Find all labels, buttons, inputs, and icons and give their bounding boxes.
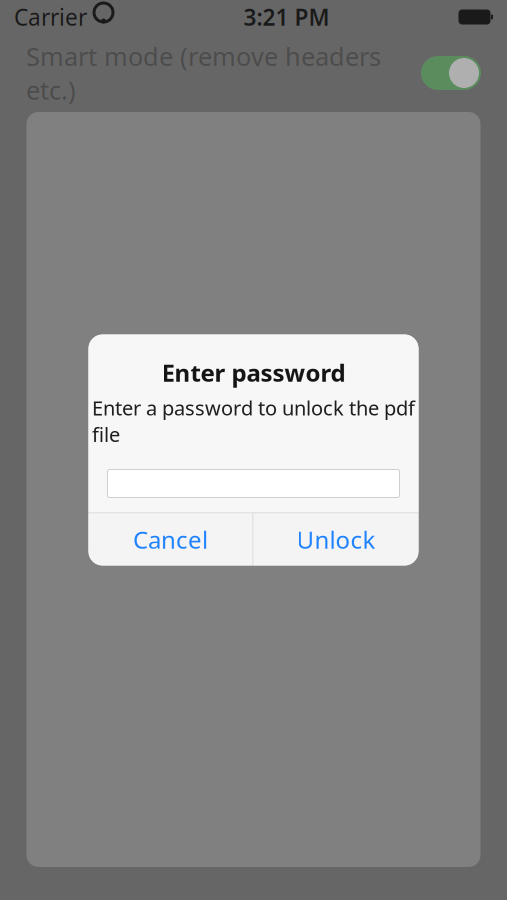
button[interactable]: Cancel: [88, 513, 252, 565]
staticText: Unlock: [296, 524, 375, 555]
staticText: Enter a password to unlock the pdf file: [92, 394, 415, 447]
staticText: Carrier: [14, 2, 87, 32]
staticText: 3:21 PM: [243, 2, 329, 32]
button[interactable]: Unlock: [253, 513, 418, 565]
button[interactable]: Smart mode: [421, 56, 481, 90]
staticText: Cancel: [133, 524, 208, 555]
staticText: Smart mode (remove headers etc.): [26, 39, 381, 107]
staticText: Enter password: [161, 356, 345, 388]
